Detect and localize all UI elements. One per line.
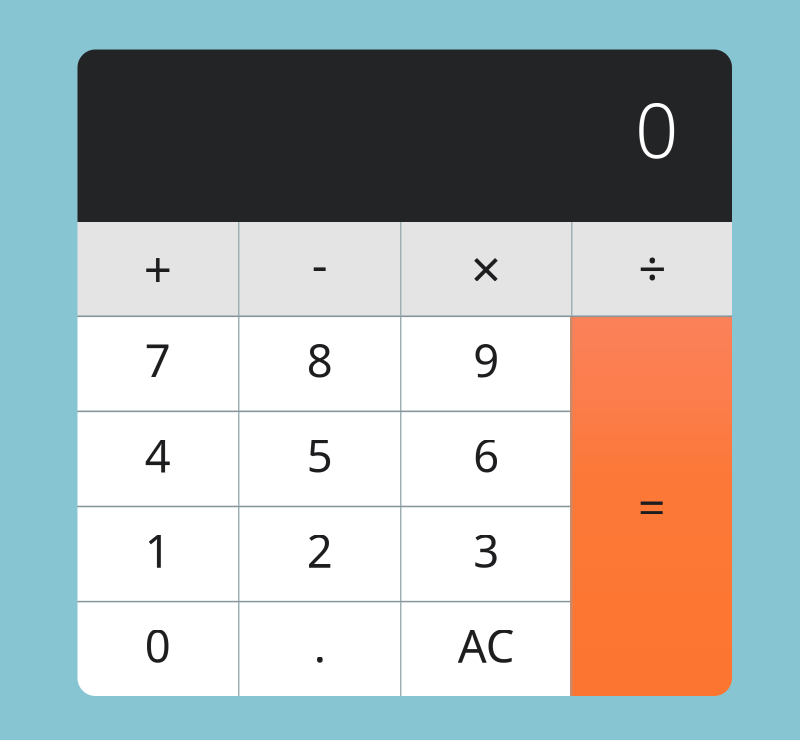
button[interactable]: 1 [77, 507, 238, 601]
staticText: × [471, 232, 502, 303]
staticText: ÷ [638, 234, 666, 300]
button[interactable]: 7 [77, 317, 238, 411]
button[interactable]: 8 [239, 317, 400, 411]
button[interactable]: . [239, 602, 400, 696]
staticText: 2 [307, 520, 333, 580]
staticText: 5 [307, 425, 333, 485]
staticText: 0 [145, 615, 171, 675]
button[interactable]: × [401, 222, 571, 316]
button[interactable]: + [77, 222, 238, 316]
button[interactable]: 3 [401, 507, 571, 601]
staticText: 7 [145, 330, 171, 390]
button[interactable]: 9 [401, 317, 571, 411]
staticText: 1 [145, 520, 171, 580]
button[interactable]: 5 [239, 412, 400, 506]
button[interactable]: ÷ [572, 222, 732, 316]
button[interactable]: AC [401, 602, 571, 696]
staticText: 9 [473, 330, 499, 390]
staticText: - [312, 230, 328, 296]
button[interactable]: = [571, 317, 732, 696]
staticText: 4 [145, 425, 171, 485]
staticText: 8 [307, 330, 333, 390]
button[interactable]: 0 [77, 602, 238, 696]
staticText: + [144, 235, 172, 300]
button[interactable]: 4 [77, 412, 238, 506]
button[interactable]: - [239, 222, 400, 316]
staticText: . [314, 615, 326, 675]
staticText: 3 [473, 520, 499, 580]
button[interactable]: 6 [401, 412, 571, 506]
staticText: AC [458, 615, 515, 675]
staticText: 0 [635, 78, 678, 179]
staticText: 6 [473, 425, 499, 485]
button[interactable]: 2 [239, 507, 400, 601]
staticText: = [638, 474, 665, 538]
